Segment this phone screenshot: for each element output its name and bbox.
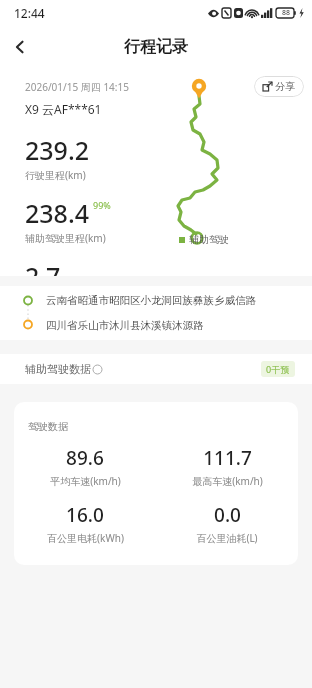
staticText: 12:44 (14, 5, 45, 21)
button[interactable]: 分享 (254, 76, 304, 97)
staticText: 行程记录 (124, 37, 188, 57)
staticText: 88 (282, 8, 291, 18)
staticText: 百公里电耗(kWh) (47, 531, 124, 545)
staticText: 辅助驾驶 (189, 233, 229, 246)
staticText: 16.0 (66, 502, 104, 528)
staticText: 驾驶数据 (28, 420, 68, 433)
staticText: 239.2 (25, 133, 90, 167)
staticText: 辅助驾驶数据 (25, 362, 91, 376)
staticText: 238.4 (25, 196, 90, 230)
button[interactable]: Back (0, 27, 40, 67)
staticText: 行驶里程(km) (25, 168, 86, 182)
staticText: 四川省乐山市沐川县沐溪镇沐源路 (46, 319, 204, 332)
staticText: 云南省昭通市昭阳区小龙洞回族彝族乡威信路 (46, 294, 256, 307)
staticText: 0干预 (266, 363, 290, 375)
staticText: 89.6 (66, 445, 104, 471)
staticText: 辅助驾驶里程(km) (25, 231, 106, 245)
staticText: 最高车速(km/h) (192, 474, 263, 488)
button[interactable]: 辅助驾驶数据 (0, 354, 312, 384)
staticText: 2026/01/15 周四 14:15 (25, 80, 129, 94)
staticText: 99% (93, 199, 111, 211)
staticText: 百公里油耗(L) (196, 531, 258, 545)
staticText: 平均车速(km/h) (50, 474, 121, 488)
staticText: 分享 (275, 80, 295, 93)
staticText: X9 云AF***61 (25, 101, 102, 117)
staticText: 0.0 (214, 502, 241, 528)
staticText: 111.7 (203, 445, 252, 471)
staticText: 2.7 (25, 259, 61, 276)
